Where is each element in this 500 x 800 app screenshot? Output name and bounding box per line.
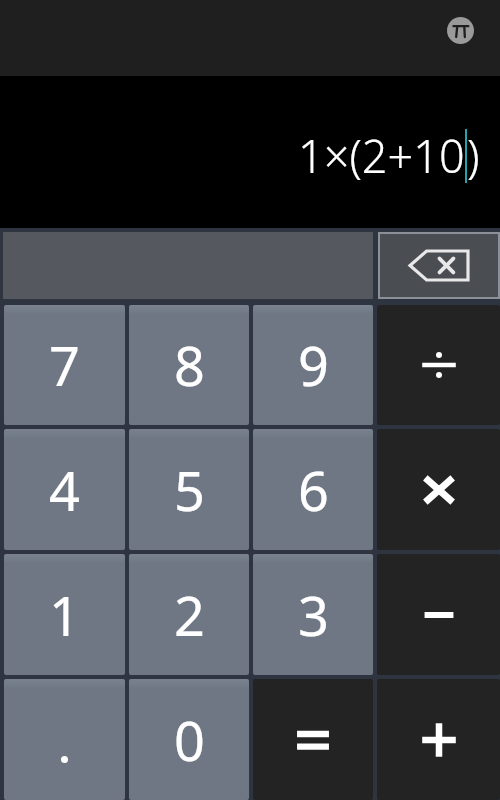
staticText: 5 — [174, 453, 205, 527]
button[interactable]: Minus — [377, 554, 500, 675]
button[interactable]: 1 — [4, 554, 125, 675]
other: Multiply — [420, 471, 458, 509]
button[interactable]: 8 — [129, 305, 249, 425]
button[interactable] — [4, 679, 125, 800]
button[interactable]: Multiply — [377, 429, 500, 550]
staticText: 4 — [49, 453, 80, 527]
other: Minus — [420, 596, 458, 634]
staticText: 0 — [174, 703, 205, 777]
button[interactable]: Equals — [253, 679, 373, 800]
staticText: 2 — [174, 578, 205, 652]
staticText: 9 — [298, 328, 329, 402]
staticText: 3 — [298, 578, 329, 652]
button[interactable]: Delete — [378, 232, 500, 299]
button[interactable]: 7 — [4, 305, 125, 425]
button[interactable]: 0 — [129, 679, 249, 800]
button[interactable]: 4 — [4, 429, 125, 550]
button[interactable]: Constants — [440, 10, 480, 50]
staticText: 6 — [298, 453, 329, 527]
button[interactable]: Divide — [377, 305, 500, 425]
button[interactable]: 9 — [253, 305, 373, 425]
staticText: 1×(2+10 — [298, 125, 465, 186]
staticText: 8 — [174, 328, 205, 402]
other: Divide — [419, 345, 459, 385]
staticText: 7 — [49, 328, 80, 402]
button[interactable]: 2 — [129, 554, 249, 675]
staticText: ) — [467, 125, 480, 186]
button[interactable]: Plus — [377, 679, 500, 800]
other: Equals — [292, 725, 334, 755]
button[interactable]: 6 — [253, 429, 373, 550]
other: Plus — [418, 719, 460, 761]
button[interactable]: 5 — [129, 429, 249, 550]
staticText: 1 — [49, 578, 80, 652]
button[interactable]: 3 — [253, 554, 373, 675]
